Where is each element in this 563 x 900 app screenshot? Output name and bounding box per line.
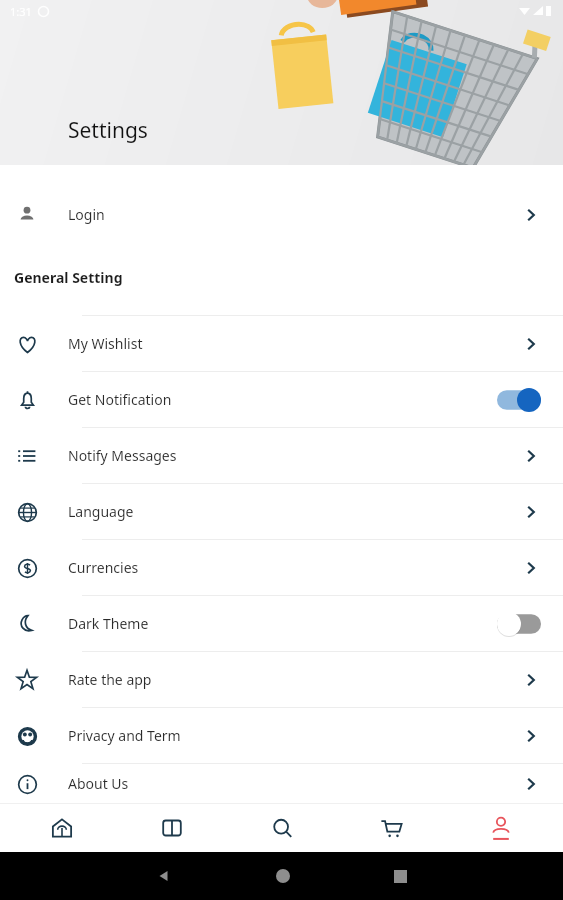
button[interactable]: Currencies xyxy=(0,540,563,595)
button[interactable]: Dark Theme xyxy=(0,596,563,651)
button[interactable]: Search xyxy=(234,804,330,852)
button[interactable]: Rate the app xyxy=(0,652,563,707)
button[interactable]: Get Notification xyxy=(0,372,563,427)
staticText: 1:31 xyxy=(10,4,32,19)
button[interactable]: Cart xyxy=(343,804,439,852)
staticText: Currencies xyxy=(68,558,139,577)
button[interactable]: Catalog xyxy=(124,804,220,852)
staticText: Rate the app xyxy=(68,670,152,689)
staticText: Dark Theme xyxy=(68,614,149,633)
button[interactable]: Login xyxy=(0,187,563,242)
staticText: Privacy and Term xyxy=(68,726,181,745)
staticText: Notify Messages xyxy=(68,446,177,465)
staticText: Language xyxy=(68,502,134,521)
staticText: Get Notification xyxy=(68,390,172,409)
staticText: My Wishlist xyxy=(68,334,143,353)
button[interactable]: About Us xyxy=(0,764,563,803)
staticText: About Us xyxy=(68,774,129,793)
button[interactable]: Notify Messages xyxy=(0,428,563,483)
button[interactable]: Profile xyxy=(453,804,549,852)
button[interactable]: Privacy and Term xyxy=(0,708,563,763)
button[interactable]: Toggle on xyxy=(497,388,541,412)
staticText: Login xyxy=(68,205,105,224)
button[interactable]: Toggle off xyxy=(497,612,541,636)
staticText: General Setting xyxy=(14,268,123,287)
button[interactable]: Language xyxy=(0,484,563,539)
button[interactable]: My Wishlist xyxy=(0,316,563,371)
button[interactable]: Home xyxy=(14,804,110,852)
staticText: Settings xyxy=(68,116,148,145)
